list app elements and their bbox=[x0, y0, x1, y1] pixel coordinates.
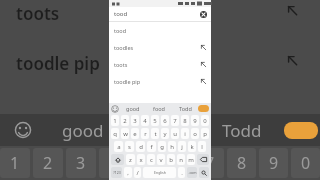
staticText: w bbox=[123, 130, 128, 138]
button[interactable]: n bbox=[177, 154, 185, 165]
staticText: 2 bbox=[123, 117, 127, 125]
button[interactable]: 8 bbox=[181, 115, 189, 126]
staticText: 6 bbox=[163, 117, 167, 125]
staticText: s bbox=[128, 143, 131, 151]
button[interactable]: 2 bbox=[121, 115, 129, 126]
button[interactable]: Emoji bbox=[111, 105, 119, 113]
button[interactable]: 4 bbox=[141, 115, 149, 126]
staticText: h bbox=[170, 143, 174, 151]
staticText: c bbox=[150, 156, 153, 164]
staticText: tood bbox=[114, 10, 128, 18]
staticText: u bbox=[173, 130, 177, 138]
button[interactable]: toodles bbox=[109, 39, 211, 56]
staticText: 8 bbox=[237, 152, 247, 174]
staticText: 5 bbox=[141, 152, 151, 174]
button[interactable]: tood bbox=[109, 22, 211, 39]
button[interactable]: c bbox=[147, 154, 155, 165]
button[interactable]: h bbox=[168, 141, 176, 152]
button[interactable]: b bbox=[167, 154, 175, 165]
staticText: i bbox=[184, 130, 186, 138]
button[interactable]: 7 bbox=[171, 115, 179, 126]
button[interactable]: o bbox=[191, 128, 199, 139]
staticText: toodle pip bbox=[16, 52, 100, 75]
button[interactable]: Insert toots bbox=[200, 61, 207, 68]
staticText: l bbox=[201, 143, 203, 151]
button[interactable]: d bbox=[136, 141, 145, 152]
button[interactable]: p bbox=[201, 128, 209, 139]
button[interactable]: l bbox=[198, 141, 206, 152]
button[interactable]: g bbox=[158, 141, 166, 152]
button[interactable]: u bbox=[171, 128, 179, 139]
button[interactable]: f bbox=[147, 141, 156, 152]
button[interactable]: ?123 bbox=[111, 167, 122, 178]
staticText: j bbox=[181, 143, 183, 151]
button[interactable]: v bbox=[157, 154, 165, 165]
button[interactable]: English bbox=[143, 167, 176, 178]
button[interactable]: , bbox=[124, 167, 132, 178]
button[interactable]: food bbox=[146, 103, 172, 114]
staticText: 5 bbox=[153, 117, 157, 125]
button[interactable]: i bbox=[181, 128, 189, 139]
button[interactable]: toodle pip bbox=[109, 73, 211, 90]
button[interactable]: j bbox=[178, 141, 186, 152]
staticText: t bbox=[154, 130, 157, 138]
button[interactable]: 0 bbox=[201, 115, 209, 126]
staticText: g bbox=[160, 143, 164, 151]
button[interactable]: e bbox=[131, 128, 139, 139]
button[interactable]: 5 bbox=[151, 115, 159, 126]
button[interactable]: 1 bbox=[111, 115, 119, 126]
staticText: ?123 bbox=[113, 170, 121, 175]
staticText: English bbox=[154, 170, 166, 175]
staticText: 2 bbox=[43, 152, 53, 174]
staticText: , bbox=[127, 169, 129, 177]
staticText: 3 bbox=[76, 152, 86, 174]
button[interactable]: good bbox=[119, 103, 146, 114]
button[interactable]: 9 bbox=[191, 115, 199, 126]
staticText: b bbox=[169, 156, 173, 164]
staticText: o bbox=[193, 130, 197, 138]
button[interactable]: 6 bbox=[161, 115, 169, 126]
staticText: n bbox=[179, 156, 183, 164]
staticText: Todd bbox=[222, 119, 262, 142]
staticText: 1 bbox=[113, 117, 117, 125]
staticText: toots bbox=[16, 2, 60, 25]
button[interactable]: tood bbox=[109, 7, 211, 21]
button[interactable]: a bbox=[114, 141, 123, 152]
button[interactable]: Insert toodle pip bbox=[200, 78, 207, 85]
button[interactable]: y bbox=[161, 128, 169, 139]
button[interactable]: x bbox=[137, 154, 145, 165]
button[interactable]: Todd bbox=[172, 103, 198, 114]
button[interactable]: toots bbox=[109, 56, 211, 73]
button[interactable]: / bbox=[134, 167, 141, 178]
button[interactable]: r bbox=[141, 128, 149, 139]
button[interactable]: Search bbox=[199, 167, 209, 178]
staticText: toodle pip bbox=[114, 78, 141, 85]
button[interactable]: .com bbox=[187, 167, 197, 178]
staticText: . bbox=[181, 169, 183, 177]
button[interactable]: m bbox=[187, 154, 195, 165]
staticText: y bbox=[163, 130, 167, 138]
button[interactable]: Backspace bbox=[197, 154, 209, 165]
button[interactable]: k bbox=[188, 141, 196, 152]
staticText: good bbox=[126, 105, 140, 112]
staticText: q bbox=[113, 130, 117, 138]
button[interactable]: Shift bbox=[111, 154, 124, 165]
button[interactable]: . bbox=[178, 167, 185, 178]
staticText: toodles bbox=[114, 44, 134, 51]
button[interactable]: z bbox=[126, 154, 135, 165]
button[interactable]: Search bbox=[198, 105, 209, 112]
button[interactable]: 3 bbox=[131, 115, 139, 126]
button[interactable]: t bbox=[151, 128, 159, 139]
staticText: x bbox=[139, 156, 143, 164]
button[interactable]: w bbox=[121, 128, 129, 139]
staticText: 7 bbox=[205, 152, 215, 174]
staticText: 9 bbox=[269, 152, 279, 174]
button[interactable]: q bbox=[111, 128, 119, 139]
button[interactable]: s bbox=[125, 141, 134, 152]
staticText: 4 bbox=[143, 117, 147, 125]
button[interactable]: Clear search bbox=[200, 11, 207, 18]
staticText: 6 bbox=[173, 152, 183, 174]
button[interactable]: Insert toodles bbox=[200, 44, 207, 51]
staticText: e bbox=[133, 130, 137, 138]
staticText: / bbox=[136, 169, 139, 177]
